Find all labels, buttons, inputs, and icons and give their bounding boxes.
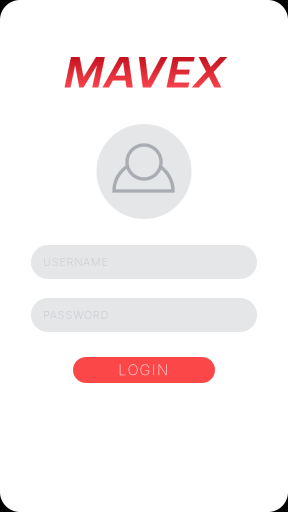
staticText: PASSWORD	[43, 308, 109, 322]
staticText: USERNAME	[43, 255, 108, 269]
button[interactable]: USERNAME	[31, 245, 257, 279]
button[interactable]: LOGIN	[73, 357, 215, 383]
staticText: LOGIN	[118, 361, 172, 379]
button[interactable]: PASSWORD	[31, 298, 257, 332]
